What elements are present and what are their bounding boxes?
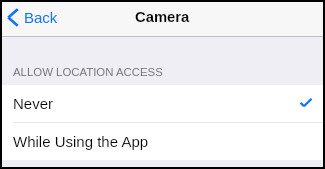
button[interactable]: While Using the App	[2, 123, 323, 160]
other: Selected	[300, 98, 312, 107]
staticText: Never	[13, 95, 54, 112]
staticText: Back	[24, 9, 58, 26]
button[interactable]: Never	[2, 85, 323, 122]
other: Back	[7, 8, 19, 27]
button[interactable]: Back	[2, 3, 68, 35]
staticText: Camera	[135, 9, 190, 26]
staticText: While Using the App	[13, 133, 149, 150]
staticText: ALLOW LOCATION ACCESS	[13, 66, 163, 79]
